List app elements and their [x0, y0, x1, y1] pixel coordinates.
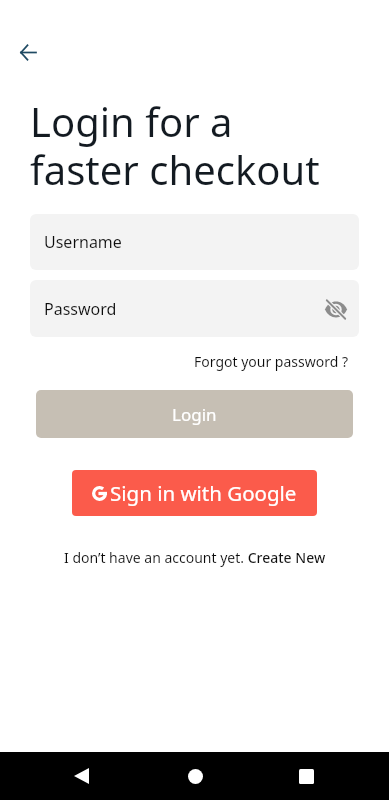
staticText: Login — [172, 403, 217, 426]
button[interactable]: Forgot your password ? — [193, 352, 350, 371]
button[interactable]: Username — [30, 214, 359, 270]
button[interactable]: Show password — [320, 293, 352, 325]
button[interactable]: Password — [30, 280, 359, 337]
staticText: Sign in with Google — [110, 479, 297, 507]
staticText: Password — [44, 298, 117, 320]
button[interactable]: Login — [36, 390, 353, 438]
button[interactable]: I don’t have an account yet. Create New — [62, 546, 328, 569]
staticText: Login for a faster checkout — [30, 94, 320, 196]
staticText: Username — [44, 231, 122, 253]
button[interactable]: Recent apps — [282, 752, 330, 800]
button[interactable]: Sign in with Google — [72, 470, 317, 516]
button[interactable]: Back — [10, 34, 46, 70]
button[interactable]: Home — [171, 752, 219, 800]
button[interactable]: Back — [57, 752, 105, 800]
